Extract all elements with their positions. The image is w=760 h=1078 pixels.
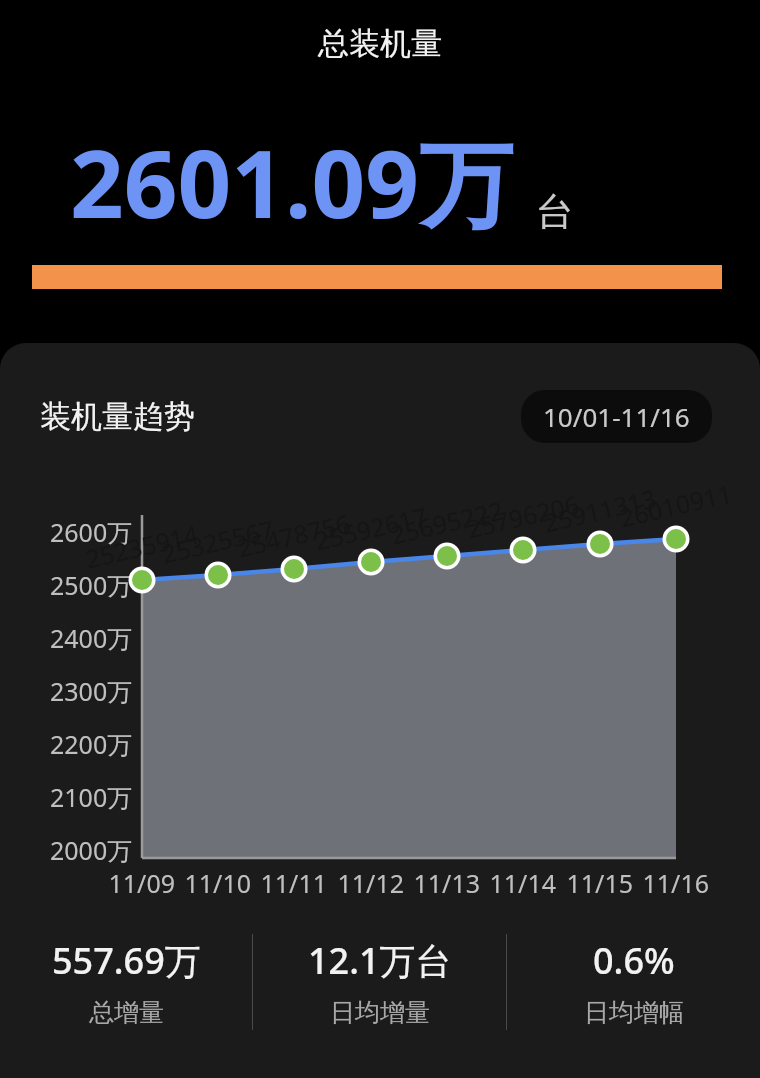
other: 装机量趋势折线图	[0, 493, 760, 903]
staticText: 总装机量	[0, 24, 760, 63]
button[interactable]: 557.69万	[0, 936, 252, 1028]
staticText: 日均增量	[330, 997, 430, 1028]
button[interactable]: 10/01-11/16	[521, 390, 712, 443]
staticText: 装机量趋势	[40, 397, 195, 436]
staticText: 557.69万	[52, 936, 201, 985]
staticText: 日均增幅	[584, 997, 684, 1028]
staticText: 10/01-11/16	[543, 399, 690, 434]
button[interactable]: 12.1万台	[253, 936, 506, 1028]
staticText: 台	[536, 188, 574, 236]
button[interactable]: 0.6%	[507, 936, 760, 1028]
staticText: 0.6%	[593, 936, 675, 985]
staticText: 总增量	[89, 997, 164, 1028]
staticText: 12.1万台	[308, 936, 452, 985]
staticText: 2601.09万	[70, 118, 514, 246]
